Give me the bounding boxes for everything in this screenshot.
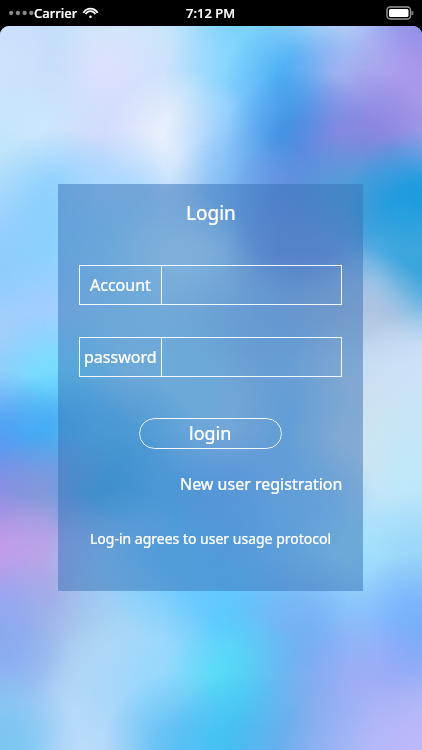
button[interactable]: Log-in agrees to user usage protocol bbox=[90, 529, 332, 548]
button[interactable]: New user registration bbox=[180, 473, 343, 495]
button[interactable]: password bbox=[79, 337, 342, 377]
staticText: 7:12 PM bbox=[186, 4, 236, 22]
staticText: Log-in agrees to user usage protocol bbox=[90, 529, 332, 548]
staticText: login bbox=[189, 421, 232, 446]
staticText: Carrier bbox=[34, 4, 78, 22]
button[interactable]: login bbox=[139, 418, 282, 449]
staticText: New user registration bbox=[180, 473, 343, 495]
staticText: Account bbox=[90, 274, 151, 296]
button[interactable]: Account bbox=[79, 265, 342, 305]
staticText: password bbox=[84, 346, 157, 368]
staticText: Login bbox=[186, 200, 236, 226]
